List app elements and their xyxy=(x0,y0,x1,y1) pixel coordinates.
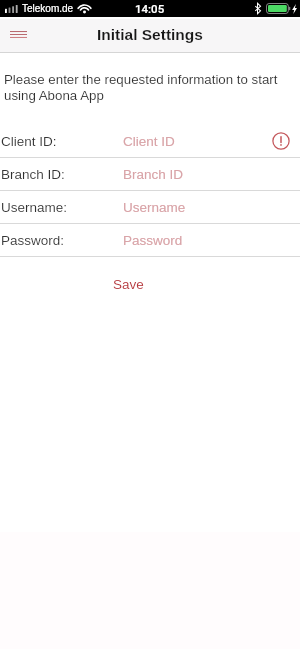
staticText: Client ID: xyxy=(1,134,57,149)
button[interactable]: Username: xyxy=(0,191,300,223)
button[interactable]: Branch ID: xyxy=(0,158,300,190)
staticText: Username: xyxy=(1,200,68,215)
staticText: Branch ID xyxy=(123,167,184,182)
staticText: 14:05 xyxy=(135,2,165,15)
staticText: Username xyxy=(123,200,186,215)
staticText: Branch ID: xyxy=(1,167,65,182)
button[interactable]: Open navigation menu xyxy=(3,21,33,51)
button[interactable]: Save xyxy=(0,277,257,307)
staticText: Telekom.de xyxy=(22,3,74,14)
staticText: Client ID xyxy=(123,134,175,149)
button[interactable]: Client ID required xyxy=(265,125,300,157)
staticText: Password xyxy=(123,233,183,248)
staticText: Initial Settings xyxy=(97,26,203,43)
button[interactable]: Password: xyxy=(0,224,300,256)
staticText: Please enter the requested information t… xyxy=(4,72,282,103)
staticText: Save xyxy=(113,277,144,292)
staticText: Password: xyxy=(1,233,65,248)
button[interactable]: Client ID: xyxy=(0,125,300,157)
